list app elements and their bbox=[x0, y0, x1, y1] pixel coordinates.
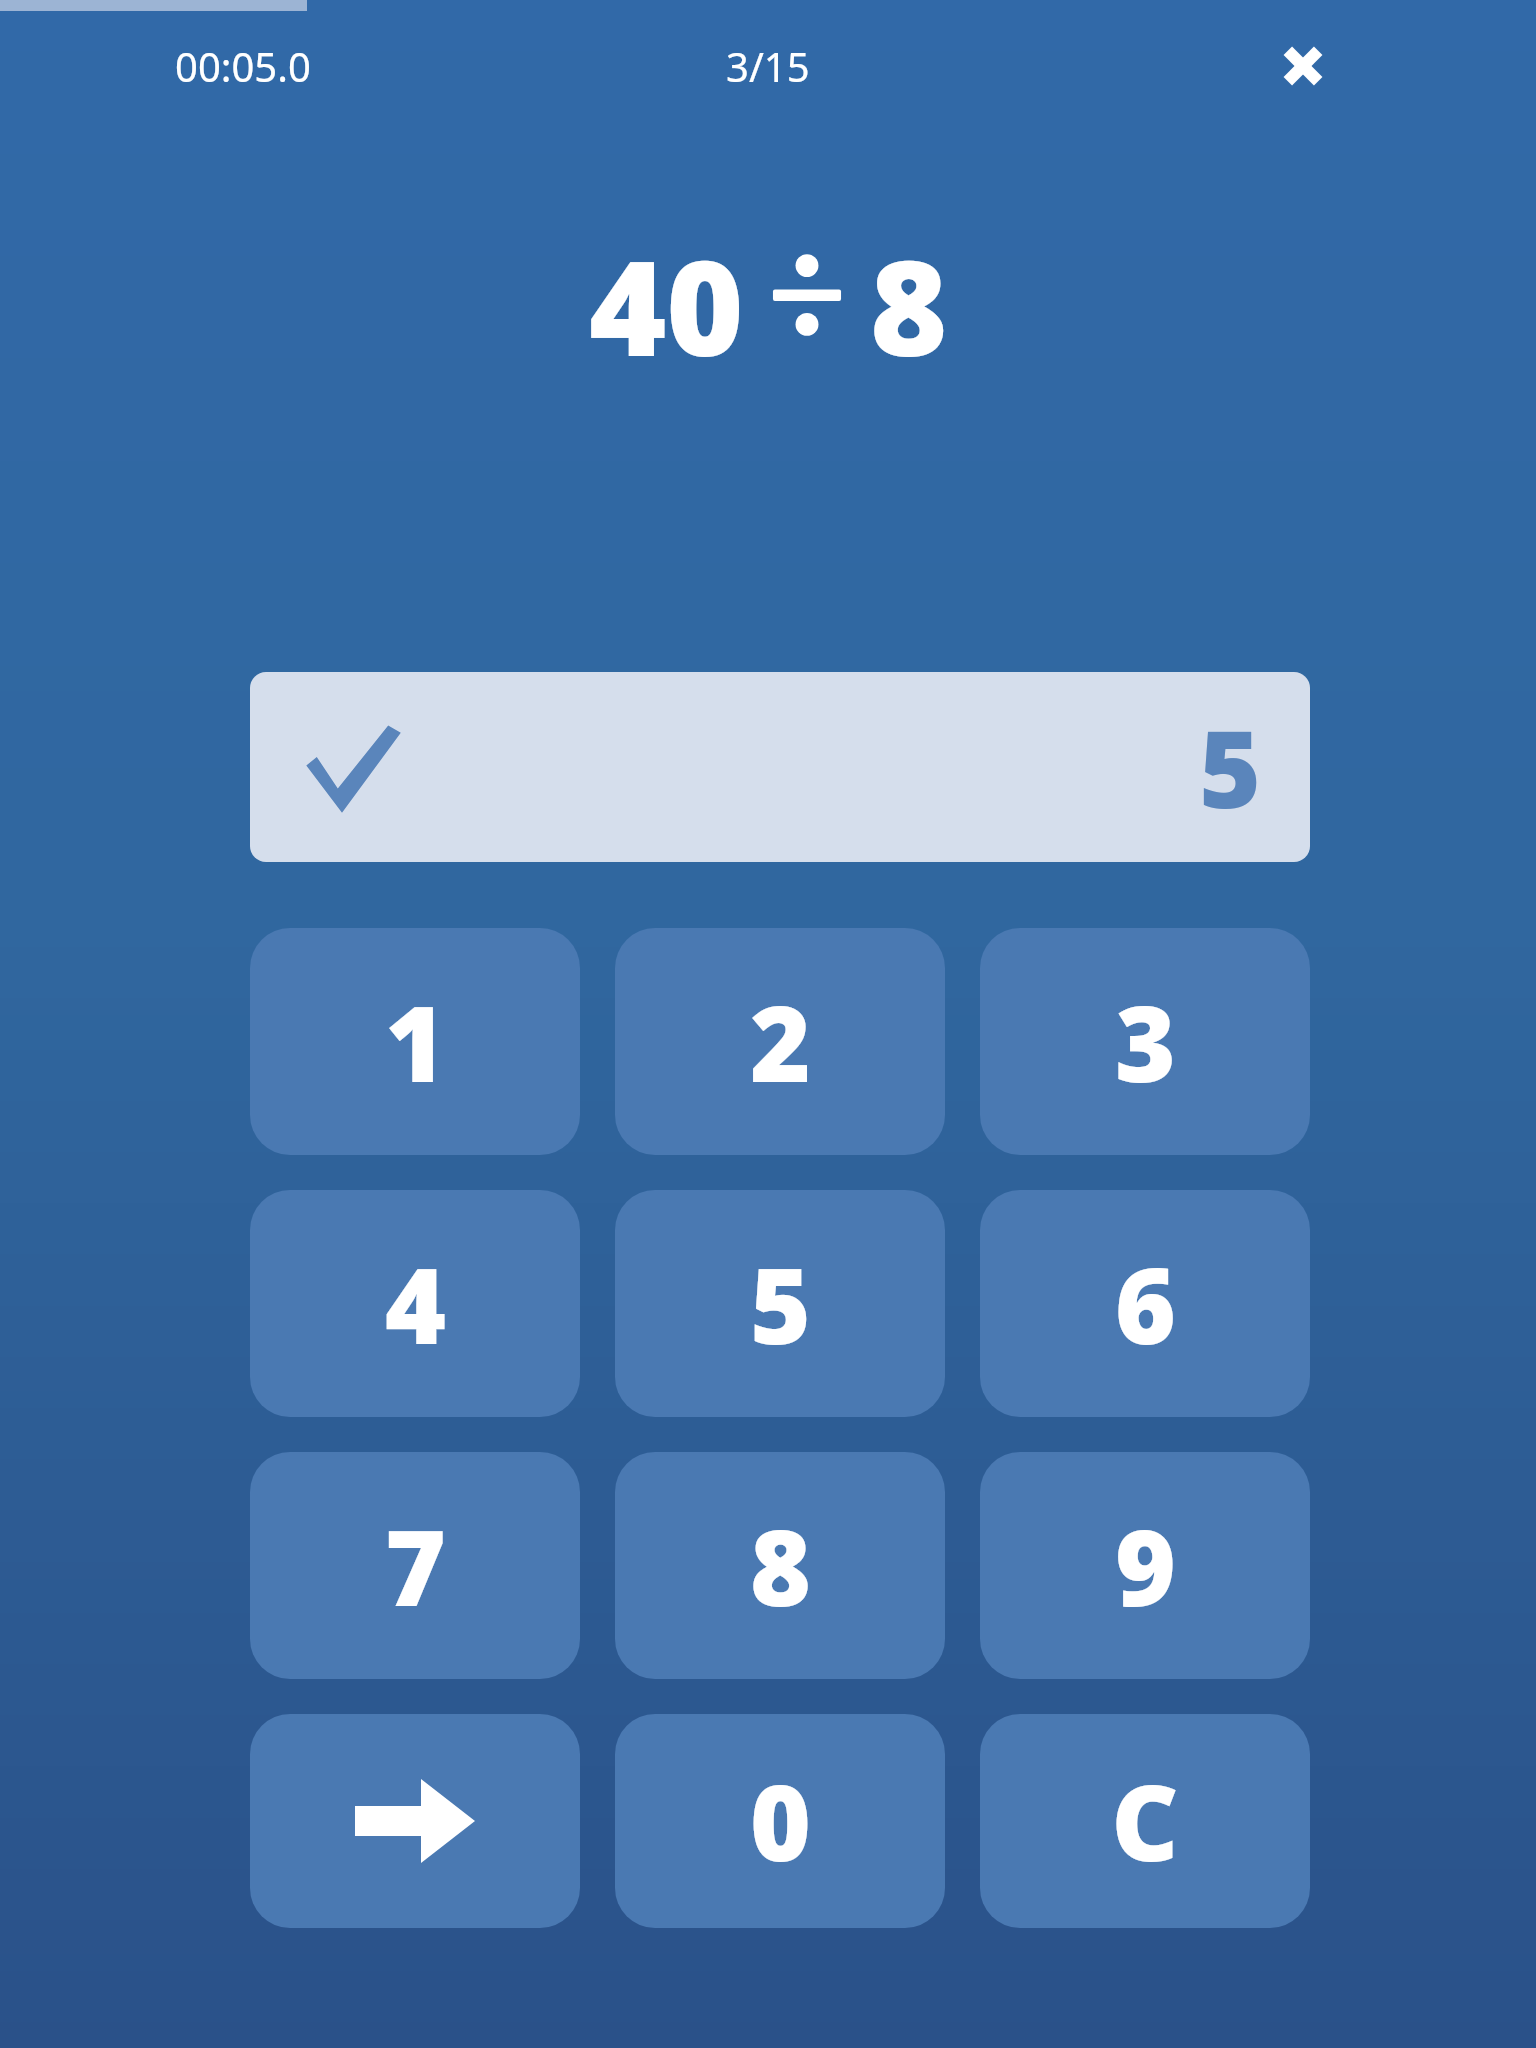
staticText: 9 bbox=[1115, 1495, 1176, 1637]
staticText: 5 bbox=[1199, 695, 1262, 839]
staticText: 8 bbox=[870, 215, 948, 375]
button[interactable]: 2 bbox=[615, 928, 945, 1155]
staticText: 00:05.0 bbox=[175, 39, 311, 93]
staticText: 4 bbox=[385, 1233, 446, 1375]
staticText: 0 bbox=[750, 1750, 811, 1892]
button[interactable]: 0 bbox=[615, 1714, 945, 1928]
staticText: 6 bbox=[1115, 1233, 1176, 1375]
staticText: 2 bbox=[750, 971, 811, 1113]
button[interactable]: 5 bbox=[615, 1190, 945, 1417]
button[interactable]: Submit answer bbox=[250, 1714, 580, 1928]
button[interactable]: 8 bbox=[615, 1452, 945, 1679]
staticText: 3 bbox=[1115, 971, 1176, 1113]
staticText: 8 bbox=[750, 1495, 811, 1637]
staticText: 40 bbox=[589, 215, 744, 375]
button[interactable]: Close bbox=[1275, 38, 1331, 94]
button[interactable]: 5 bbox=[250, 672, 1310, 862]
button[interactable]: 1 bbox=[250, 928, 580, 1155]
staticText: 5 bbox=[750, 1233, 811, 1375]
staticText: 1 bbox=[385, 971, 446, 1113]
button[interactable]: 6 bbox=[980, 1190, 1310, 1417]
staticText: 7 bbox=[385, 1495, 446, 1637]
staticText: C bbox=[1111, 1750, 1179, 1892]
button[interactable]: 4 bbox=[250, 1190, 580, 1417]
button[interactable]: 3 bbox=[980, 928, 1310, 1155]
button[interactable]: C bbox=[980, 1714, 1310, 1928]
staticText: 3/15 bbox=[726, 39, 810, 93]
button[interactable]: 7 bbox=[250, 1452, 580, 1679]
button[interactable]: 9 bbox=[980, 1452, 1310, 1679]
